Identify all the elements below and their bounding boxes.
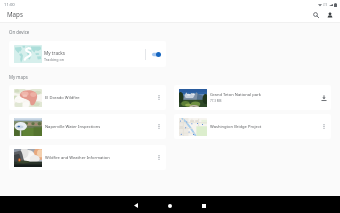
staticText: Naperville Water Inspections [45,124,101,130]
staticText: Grand Teton National park [210,92,261,98]
button[interactable]: Naperville Water Inspections [9,114,166,139]
button[interactable]: Wildfire and Weather Information [9,145,166,170]
staticText: My maps [9,74,28,80]
button[interactable]: More options [317,114,331,139]
staticText: 77.3 MB [210,99,222,103]
button[interactable]: Recent apps [192,198,216,213]
button[interactable]: Account [323,8,336,21]
button[interactable]: Tracking toggle [146,41,166,67]
staticText: El Dorado Wildfire [45,95,80,101]
button[interactable]: Search [309,8,322,21]
button[interactable]: More options [152,145,166,170]
staticText: Wildfire and Weather Information [45,155,110,161]
button[interactable]: Back [124,198,148,213]
button[interactable]: More options [152,85,166,110]
button[interactable]: Grand Teton National park [174,85,331,110]
button[interactable]: Washington Bridge Project [174,114,331,139]
staticText: On device [9,29,30,35]
staticText: 11:00 [4,2,15,8]
button[interactable]: More options [152,114,166,139]
button[interactable]: My tracks [9,41,166,67]
staticText: LTE [323,3,328,7]
button[interactable]: Home [158,198,182,213]
button[interactable]: El Dorado Wildfire [9,85,166,110]
button[interactable]: Download [317,85,331,110]
staticText: Tracking on [44,57,65,62]
staticText: Washington Bridge Project [210,124,262,130]
staticText: Maps [7,10,23,18]
staticText: My tracks [44,50,66,56]
